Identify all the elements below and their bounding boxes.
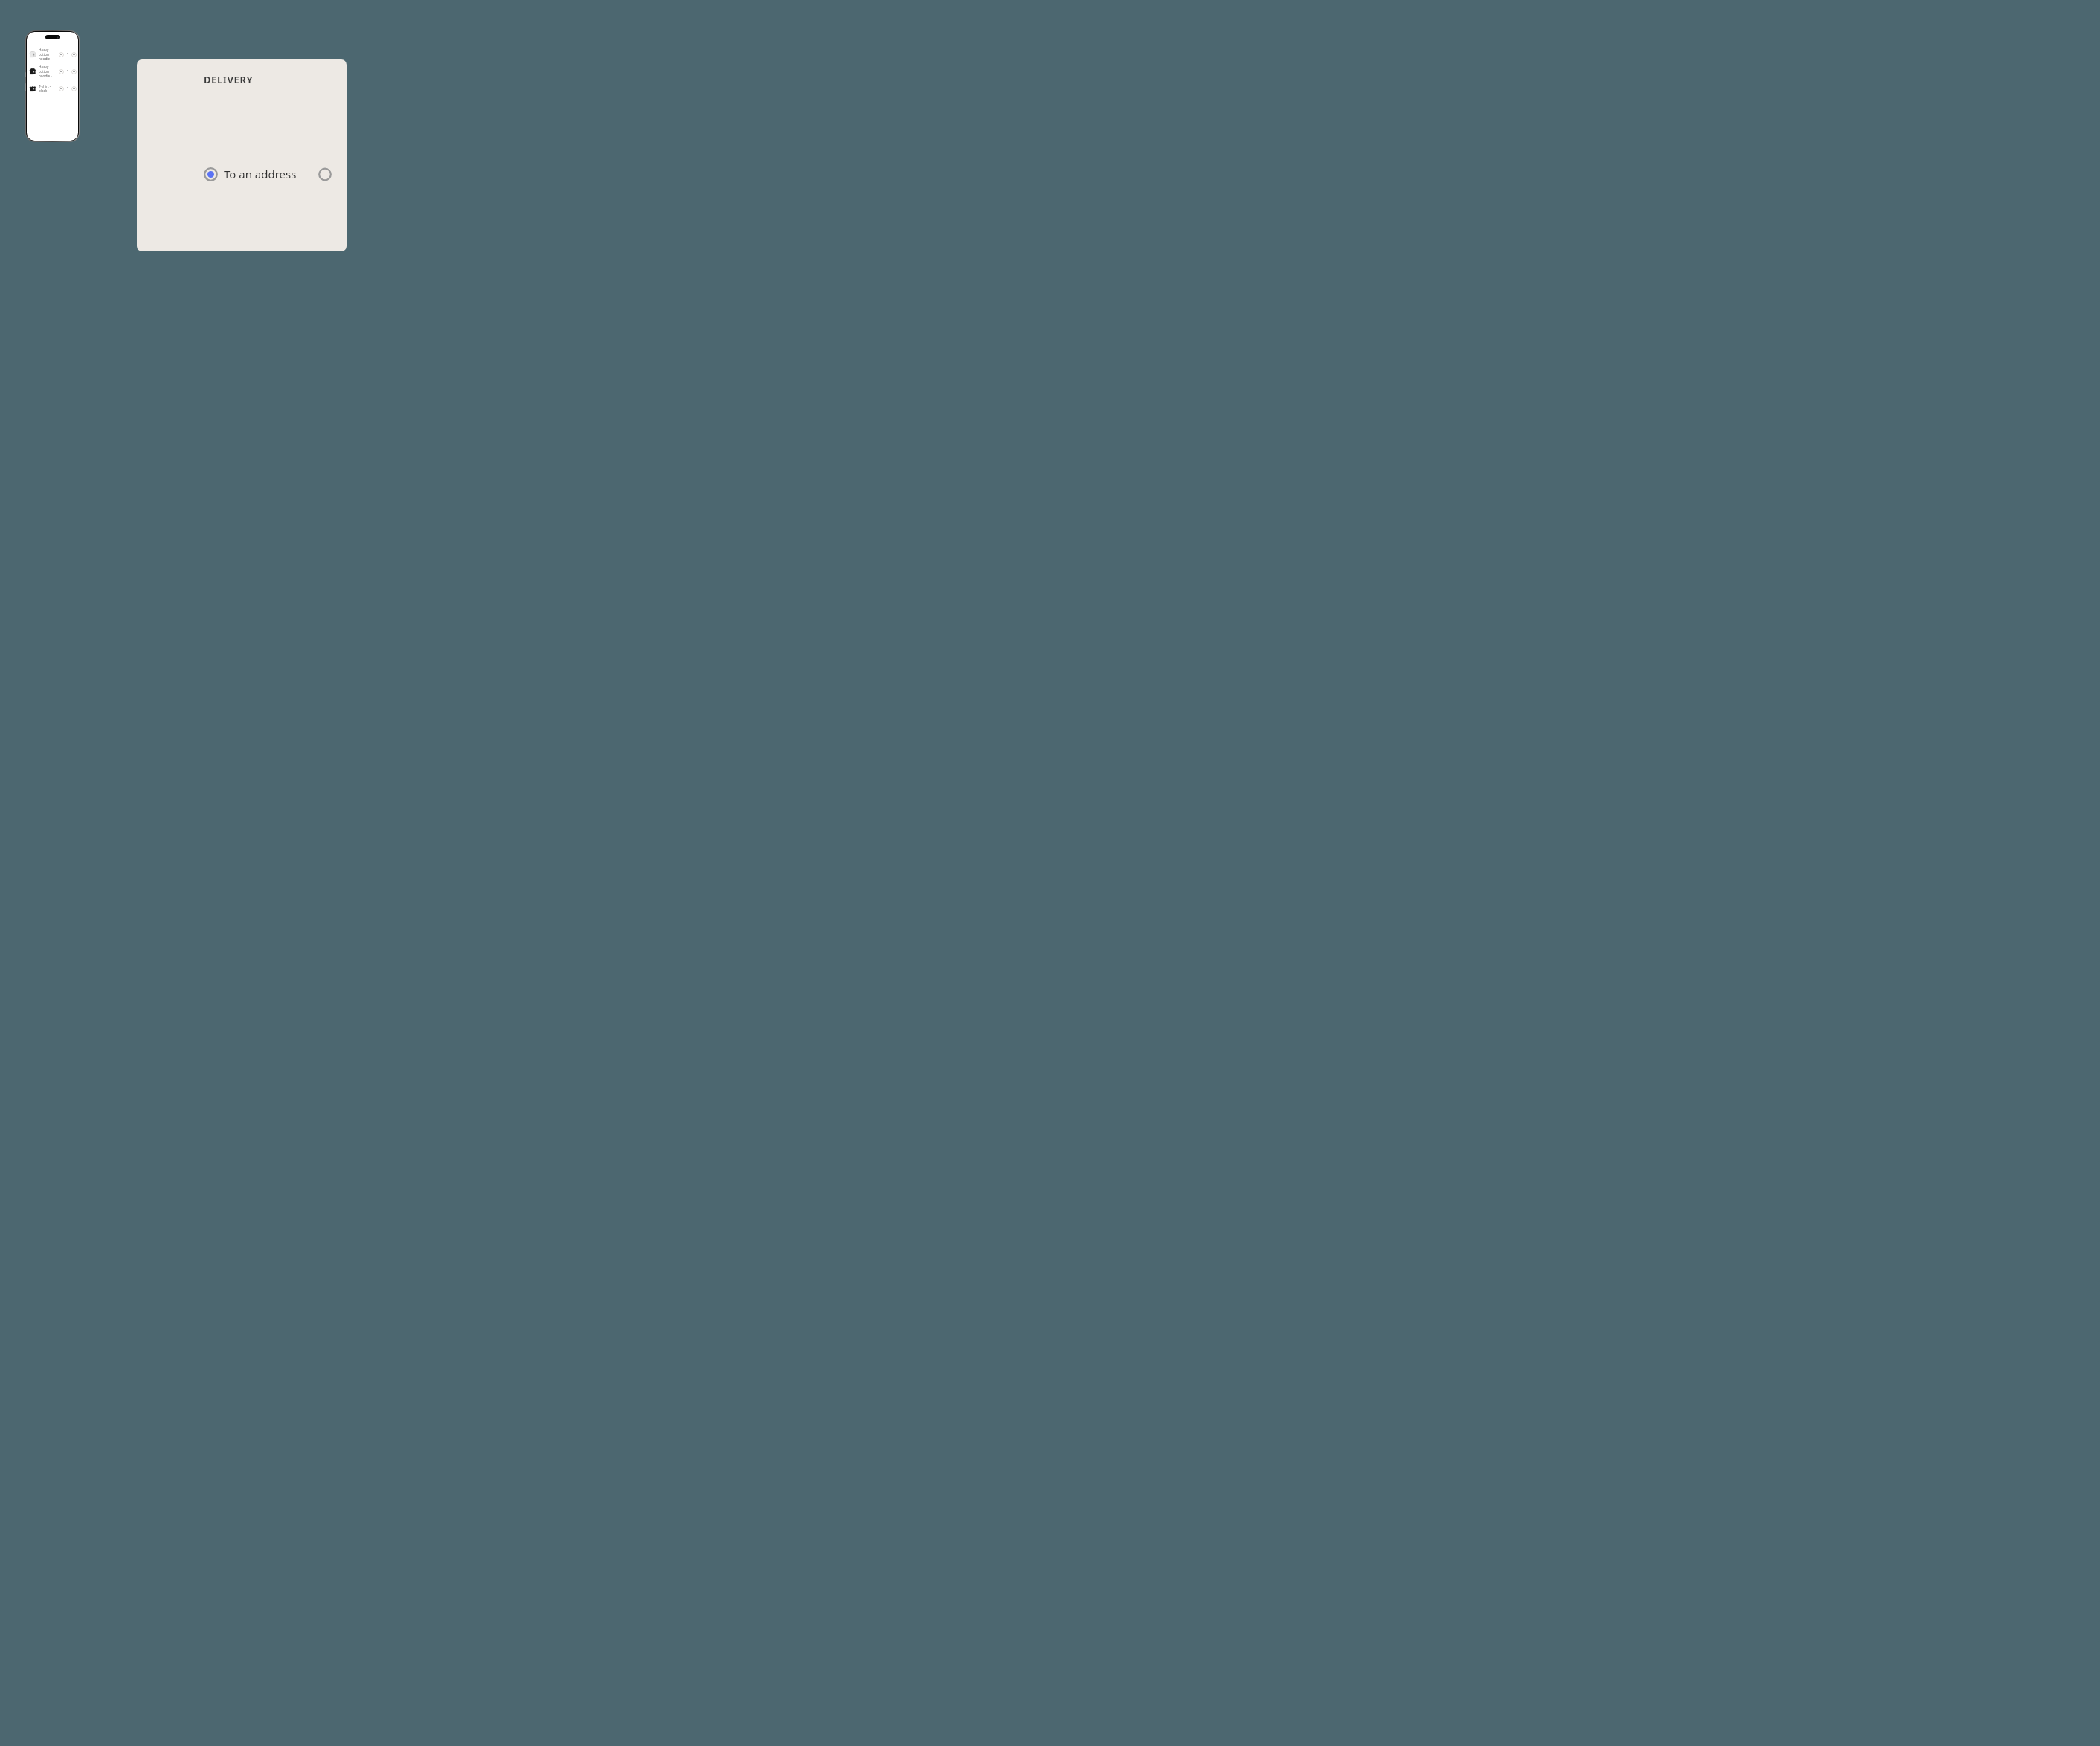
button[interactable]: To an address — [204, 167, 300, 181]
staticText: Heavy cotton hoodie - white — [39, 48, 59, 61]
button[interactable]: Increase quantity — [71, 52, 77, 57]
staticText: 1 — [66, 68, 69, 74]
button[interactable]: Decrease quantity — [59, 52, 64, 57]
button[interactable]: Personal pickup — [318, 97, 332, 251]
staticText: DELIVERY — [204, 73, 254, 86]
button[interactable]: Heavy cotton hoodie - white — [27, 48, 78, 61]
button[interactable]: Increase quantity — [71, 69, 77, 74]
staticText: 1 — [66, 51, 69, 57]
button[interactable]: Heavy cotton hoodie - black — [27, 65, 78, 78]
staticText: 1 — [66, 86, 69, 91]
button[interactable]: Decrease quantity — [59, 69, 64, 74]
button[interactable]: Decrease quantity — [59, 86, 64, 91]
staticText: To an address — [224, 167, 297, 181]
staticText: Heavy cotton hoodie - black — [39, 65, 59, 78]
staticText: T-shirt - black — [39, 84, 59, 93]
button[interactable]: Increase quantity — [71, 86, 77, 91]
button[interactable]: T-shirt - black — [27, 82, 78, 95]
